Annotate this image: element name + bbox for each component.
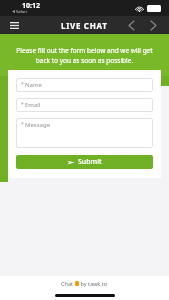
staticText: by tawk.to [79, 280, 108, 287]
button[interactable]: Back [123, 17, 139, 33]
button[interactable]: Menu [6, 17, 22, 33]
button[interactable]: Forward [145, 17, 161, 33]
button[interactable]: Chat [0, 276, 169, 291]
staticText: * [21, 101, 24, 108]
staticText: LIVE CHAT [61, 20, 108, 31]
staticText: Message [25, 121, 51, 129]
staticText: * [21, 121, 24, 128]
button[interactable]: * [16, 98, 153, 112]
staticText: Please fill out the form below and we wi… [10, 46, 159, 65]
staticText: Submit [78, 157, 102, 167]
staticText: Chat [61, 280, 75, 287]
staticText: Name [25, 81, 42, 89]
staticText: 10:12 [22, 1, 40, 11]
staticText: * [21, 81, 24, 88]
button[interactable]: * [16, 118, 153, 148]
button[interactable]: Submit [16, 155, 153, 169]
staticText: Email [25, 101, 41, 109]
button[interactable]: * [16, 78, 153, 92]
staticText: Safari [16, 9, 27, 14]
